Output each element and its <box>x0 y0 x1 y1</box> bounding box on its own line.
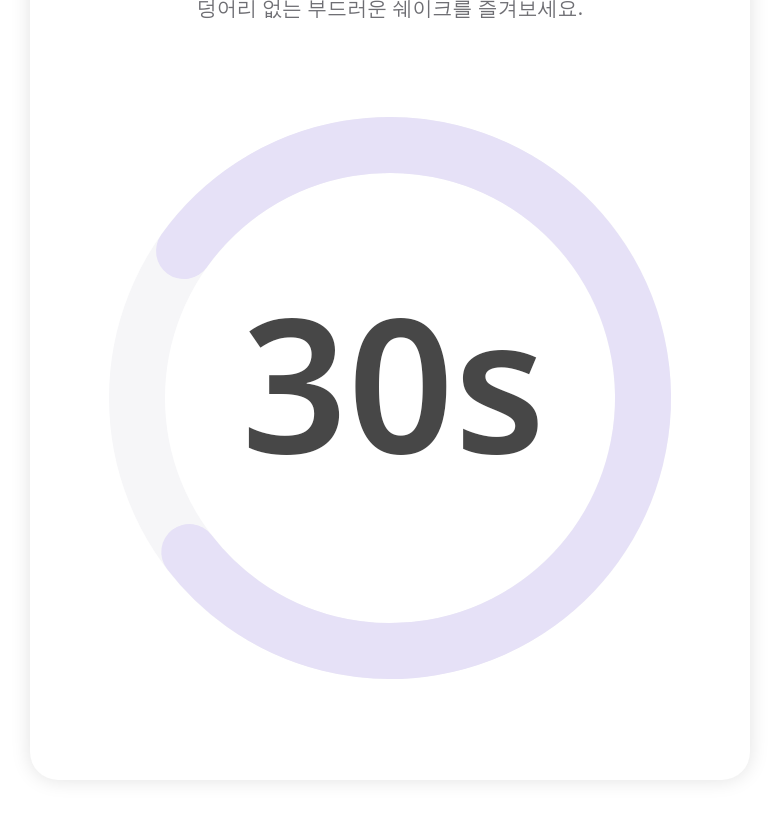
staticText: 30s <box>241 254 546 507</box>
button[interactable] <box>30 0 750 780</box>
staticText: 덩어리 없는 부드러운 쉐이크를 즐겨보세요. <box>30 0 750 21</box>
